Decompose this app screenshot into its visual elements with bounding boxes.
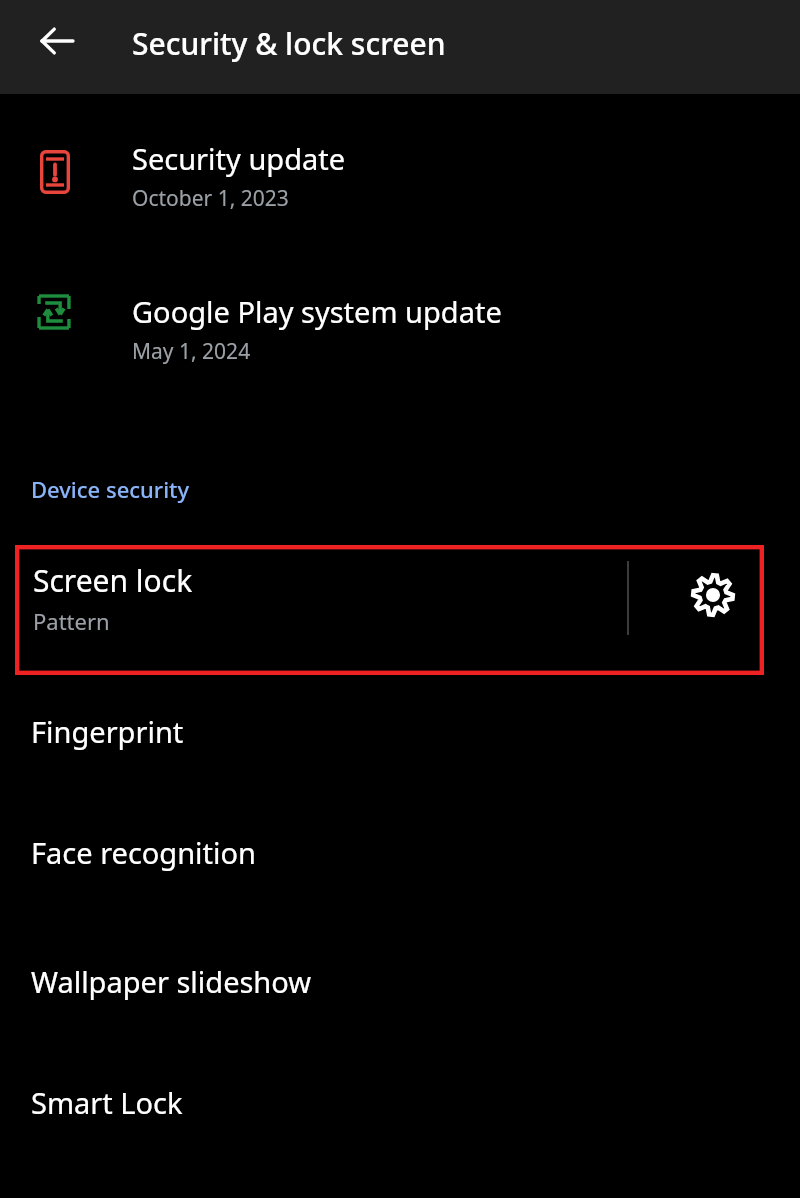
button[interactable]: Face recognition <box>0 802 800 902</box>
button[interactable]: Screen lock settings <box>670 552 756 638</box>
button[interactable]: Google Play system update <box>0 271 800 375</box>
staticText: May 1, 2024 <box>132 337 251 366</box>
staticText: Fingerprint <box>31 712 184 751</box>
button[interactable]: Wallpaper slideshow <box>0 931 800 1031</box>
button[interactable]: Smart Lock <box>0 1052 800 1152</box>
button[interactable]: Back <box>27 11 87 71</box>
staticText: Security & lock screen <box>132 23 446 64</box>
staticText: October 1, 2023 <box>132 184 289 213</box>
staticText: Google Play system update <box>132 292 502 331</box>
staticText: Wallpaper slideshow <box>31 962 312 1001</box>
staticText: Security update <box>132 139 346 178</box>
staticText: Face recognition <box>31 833 257 872</box>
button[interactable]: Screen lock <box>15 545 764 675</box>
staticText: Pattern <box>33 606 110 636</box>
staticText: Smart Lock <box>31 1083 183 1122</box>
staticText: Device security <box>31 474 190 504</box>
button[interactable]: Security update <box>0 118 800 222</box>
button[interactable]: Fingerprint <box>0 681 800 781</box>
staticText: Screen lock <box>33 560 193 601</box>
